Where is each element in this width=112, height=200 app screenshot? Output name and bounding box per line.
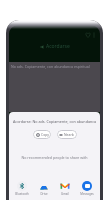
button[interactable]: Drive [35, 181, 53, 196]
button[interactable]: Nearby [57, 130, 77, 139]
button[interactable]: Messages [78, 181, 96, 196]
staticText: Acordarse: No ads. Copiamente, con abund… [13, 119, 100, 124]
staticText: No recommended people to share with [9, 155, 100, 160]
staticText: Gmail [61, 192, 69, 196]
staticText: Drive [40, 192, 48, 196]
button[interactable]: Gmail [56, 181, 74, 196]
staticText: Messages [80, 192, 94, 196]
staticText: Bluetooth [15, 192, 29, 196]
staticText: Copy [41, 132, 49, 137]
staticText: Acordarse [46, 43, 70, 50]
button[interactable]: Copy [33, 130, 51, 139]
staticText: No ads. Copiamente, con abundanca espiri… [11, 64, 100, 69]
button[interactable]: Bluetooth [13, 181, 31, 196]
staticText: Nearby [64, 132, 75, 137]
